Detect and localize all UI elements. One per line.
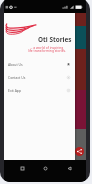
- button[interactable]: Home: [39, 162, 51, 174]
- button[interactable]: Recent apps: [16, 162, 28, 174]
- button[interactable]: About Us: [4, 58, 75, 71]
- staticText: ... a world of inspiring, life transform…: [23, 45, 71, 53]
- staticText: Oti Stories: [38, 35, 72, 44]
- staticText: Exit App: [8, 88, 21, 93]
- button[interactable]: Share: [75, 147, 84, 156]
- button[interactable]: Exit App: [4, 84, 75, 97]
- button[interactable]: Contact Us: [4, 71, 75, 84]
- staticText: Contact Us: [8, 75, 26, 80]
- staticText: About Us: [8, 62, 23, 67]
- button[interactable]: Back: [63, 162, 75, 174]
